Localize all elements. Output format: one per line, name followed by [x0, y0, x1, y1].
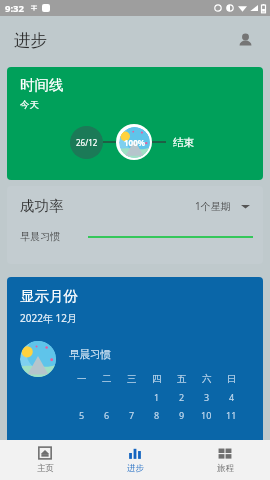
button[interactable]: 进步	[90, 440, 180, 480]
button[interactable]: 主页	[0, 440, 90, 480]
staticText: 26/12	[76, 137, 98, 148]
staticText: 9:32	[5, 2, 24, 15]
staticText: 1个星期	[195, 199, 231, 213]
staticText: 主页	[37, 463, 54, 474]
staticText: 8	[154, 409, 160, 421]
staticText: 9	[179, 409, 185, 421]
staticText: 早晨习惯	[69, 348, 111, 361]
staticText: 二	[102, 373, 112, 385]
staticText: 六	[202, 373, 212, 385]
staticText: 成功率	[20, 197, 64, 215]
staticText: 10	[201, 409, 212, 421]
staticText: 6	[104, 409, 110, 421]
button[interactable]: 成功率	[7, 186, 263, 264]
staticText: 四	[152, 373, 162, 385]
staticText: 时间线	[20, 76, 64, 94]
button[interactable]: Account	[230, 25, 260, 55]
staticText: 显示月份	[20, 287, 78, 305]
staticText: 100%	[124, 137, 145, 148]
staticText: 1	[154, 391, 160, 403]
staticText: 三	[127, 373, 137, 385]
button[interactable]: 时间线	[7, 67, 263, 180]
staticText: 11	[226, 409, 237, 421]
staticText: 2022年 12月	[20, 311, 77, 325]
button[interactable]: 旅程	[180, 440, 270, 480]
staticText: 7	[129, 409, 135, 421]
button[interactable]: 1个星期	[195, 199, 250, 213]
staticText: 旅程	[217, 463, 234, 474]
staticText: 3	[204, 391, 210, 403]
staticText: 2	[179, 391, 185, 403]
staticText: 五	[177, 373, 187, 385]
button[interactable]: 显示月份	[7, 277, 263, 440]
staticText: 结束	[173, 136, 194, 149]
staticText: 日	[227, 373, 237, 385]
staticText: 进步	[127, 463, 144, 474]
staticText: 早晨习惯	[20, 230, 60, 243]
staticText: 进步	[14, 30, 47, 51]
staticText: 一	[77, 373, 87, 385]
staticText: 5	[79, 409, 85, 421]
staticText: 今天	[20, 99, 39, 111]
staticText: 4	[229, 391, 235, 403]
